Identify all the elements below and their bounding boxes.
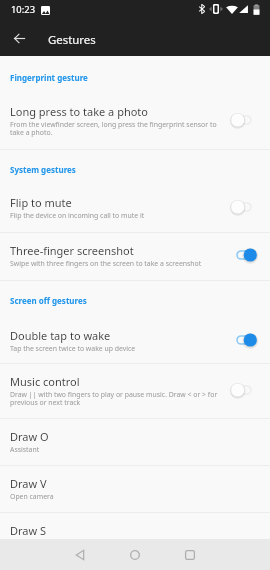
staticText: Flip the device on incoming call to mute… [10, 211, 145, 220]
staticText: Three-finger screenshot [10, 243, 134, 258]
staticText: Flip to mute [10, 195, 72, 210]
staticText: Draw || with two fingers to play or paus… [10, 390, 218, 407]
staticText: From the viewfinder screen, long press t… [10, 120, 217, 137]
staticText: Assistant [10, 445, 40, 454]
staticText: Long press to take a photo [10, 104, 148, 119]
button[interactable]: Music control [0, 363, 270, 418]
button[interactable]: Long press to take a photo [0, 56, 270, 149]
button[interactable]: Draw O [0, 418, 270, 465]
staticText: Gestures [48, 32, 96, 48]
button[interactable]: Double tap to wake [0, 280, 270, 364]
button[interactable]: On [229, 244, 259, 266]
button[interactable]: Three-finger screenshot [0, 232, 270, 280]
button[interactable]: On [229, 329, 259, 351]
button[interactable]: Home [108, 539, 162, 570]
staticText: Open camera [10, 492, 54, 501]
button[interactable]: Recent apps [163, 539, 217, 570]
staticText: System gestures [10, 164, 76, 175]
staticText: Draw V [10, 476, 47, 491]
staticText: Draw O [10, 429, 49, 444]
button[interactable]: Draw S [0, 512, 270, 539]
staticText: 10:23 [11, 3, 36, 16]
staticText: Swipe with three fingers on the screen t… [10, 259, 202, 268]
button[interactable]: Off [229, 109, 259, 131]
staticText: Tap the screen twice to wake up device [10, 344, 136, 353]
button[interactable]: Off [229, 196, 259, 218]
staticText: Double tap to wake [10, 328, 111, 343]
button[interactable]: Off [229, 379, 259, 401]
staticText: Music control [10, 374, 80, 389]
staticText: Draw S [10, 523, 47, 538]
button[interactable]: Flip to mute [0, 149, 270, 232]
staticText: Screen off gestures [10, 295, 87, 306]
staticText: Fingerprint gesture [10, 72, 88, 83]
button[interactable]: Draw V [0, 465, 270, 512]
button[interactable]: Navigate up [6, 25, 32, 51]
button[interactable]: Back [53, 539, 107, 570]
